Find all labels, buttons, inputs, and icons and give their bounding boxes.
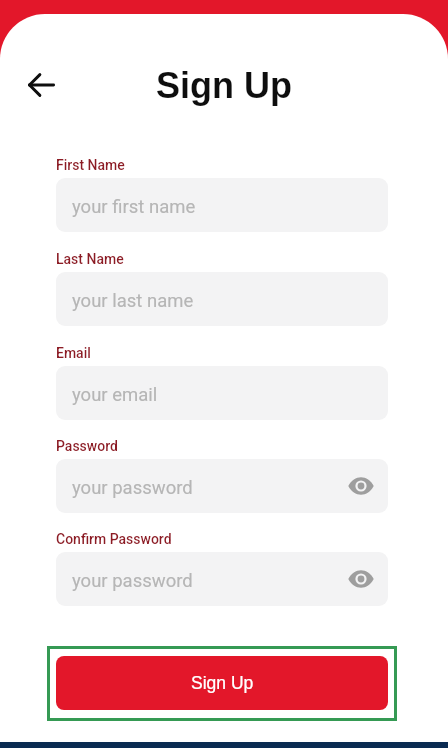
staticText: your password (72, 570, 193, 592)
staticText: Sign Up (191, 673, 254, 693)
button[interactable]: Show password (345, 470, 377, 502)
staticText: your password (72, 477, 193, 499)
staticText: your first name (72, 196, 196, 218)
staticText: Email (56, 345, 91, 361)
button[interactable]: your password (56, 552, 388, 606)
staticText: Last Name (56, 251, 124, 267)
staticText: your email (72, 384, 158, 406)
button[interactable]: your first name (56, 178, 388, 232)
button[interactable]: your last name (56, 272, 388, 326)
button[interactable]: your email (56, 366, 388, 420)
button[interactable]: Sign Up (56, 656, 388, 710)
button[interactable]: Show password (345, 563, 377, 595)
staticText: your last name (72, 290, 194, 312)
staticText: Password (56, 438, 118, 454)
staticText: Sign Up (156, 65, 292, 105)
button[interactable]: Back (15, 59, 67, 111)
button[interactable]: your password (56, 459, 388, 513)
staticText: Confirm Password (56, 531, 172, 547)
staticText: First Name (56, 157, 125, 173)
